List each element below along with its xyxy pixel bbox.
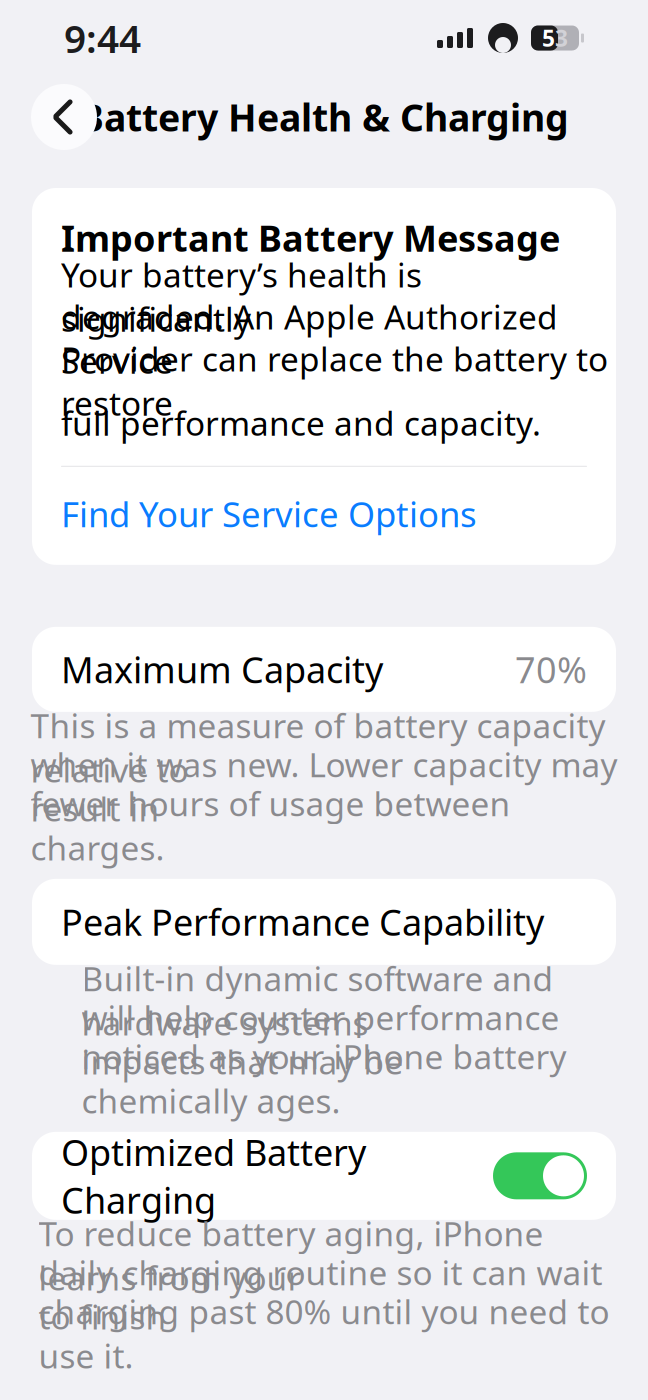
staticText: To reduce battery aging, iPhone learns f…: [38, 1211, 543, 1300]
staticText: Peak Performance Capability: [61, 898, 544, 946]
staticText: This is a measure of battery capacity re…: [30, 703, 605, 792]
staticText: degraded. An Apple Authorized Service: [61, 294, 558, 383]
staticText: 70%: [515, 645, 587, 693]
staticText: daily charging routine so it can wait to…: [38, 1250, 602, 1339]
staticText: noticed as your iPhone battery chemicall…: [81, 1034, 566, 1123]
staticText: full performance and capacity.: [61, 401, 541, 445]
staticText: will help counter performance impacts th…: [81, 995, 559, 1084]
button[interactable]: Optimized Battery Charging: [32, 1132, 616, 1220]
staticText: Battery Health & Charging: [79, 92, 569, 142]
button[interactable]: Back: [31, 84, 97, 150]
staticText: fewer hours of usage between charges.: [30, 781, 510, 870]
staticText: 9:44: [64, 12, 141, 64]
staticText: charging past 80% until you need to use …: [38, 1289, 609, 1378]
staticText: Important Battery Message: [61, 214, 560, 262]
staticText: Optimized Battery Charging: [61, 1128, 366, 1224]
staticText: 3: [555, 23, 568, 53]
staticText: when it was new. Lower capacity may resu…: [30, 742, 617, 831]
staticText: Your battery’s health is significantly: [61, 252, 422, 341]
staticText: Find Your Service Options: [61, 491, 477, 537]
staticText: 5: [542, 23, 555, 53]
staticText: Built-in dynamic software and hardware s…: [81, 956, 553, 1045]
button[interactable]: Find Your Service Options: [32, 467, 616, 561]
staticText: Provider can replace the battery to rest…: [61, 336, 608, 425]
staticText: Maximum Capacity: [61, 645, 383, 693]
